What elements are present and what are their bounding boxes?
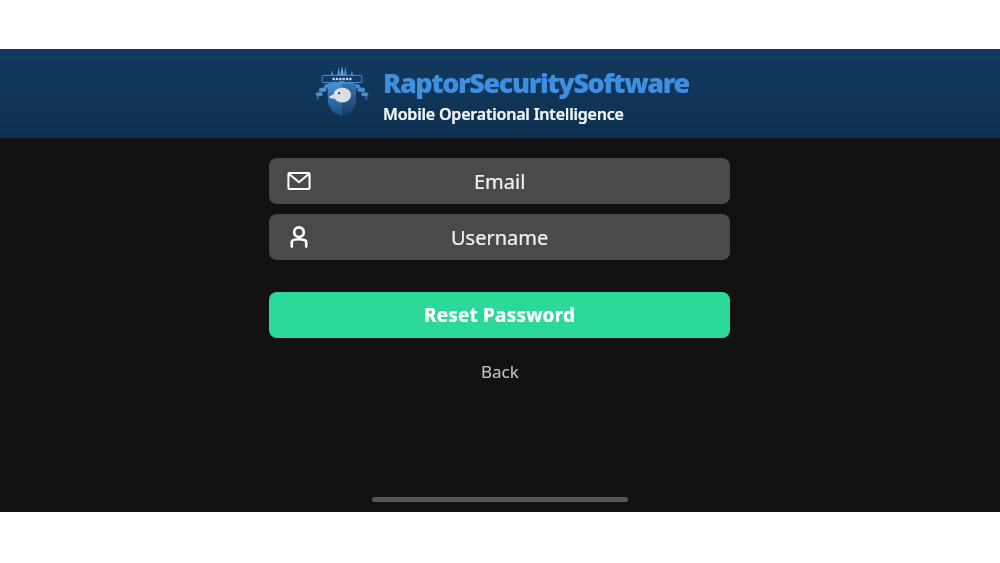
button[interactable]: Back (463, 354, 537, 389)
button[interactable]: Reset Password (269, 292, 730, 338)
other: Raptor Security Software logo (311, 63, 373, 125)
staticText: Back (481, 360, 519, 383)
staticText: Username (451, 224, 549, 251)
staticText: Email (474, 168, 526, 195)
button[interactable]: Email (269, 158, 730, 204)
staticText: RaptorSecuritySoftware (383, 64, 689, 101)
button[interactable]: Username (269, 214, 730, 260)
staticText: Reset Password (424, 302, 576, 328)
staticText: Mobile Operational Intelligence (383, 103, 624, 125)
